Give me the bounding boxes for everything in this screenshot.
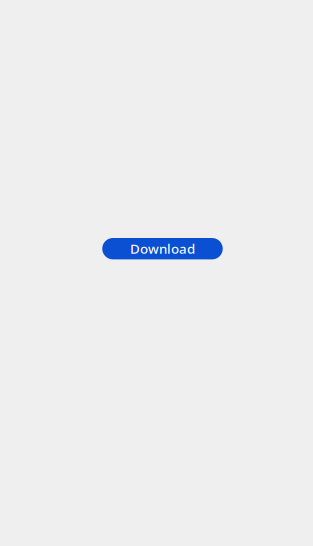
button[interactable]: Download: [102, 238, 223, 259]
staticText: Download: [130, 240, 195, 257]
